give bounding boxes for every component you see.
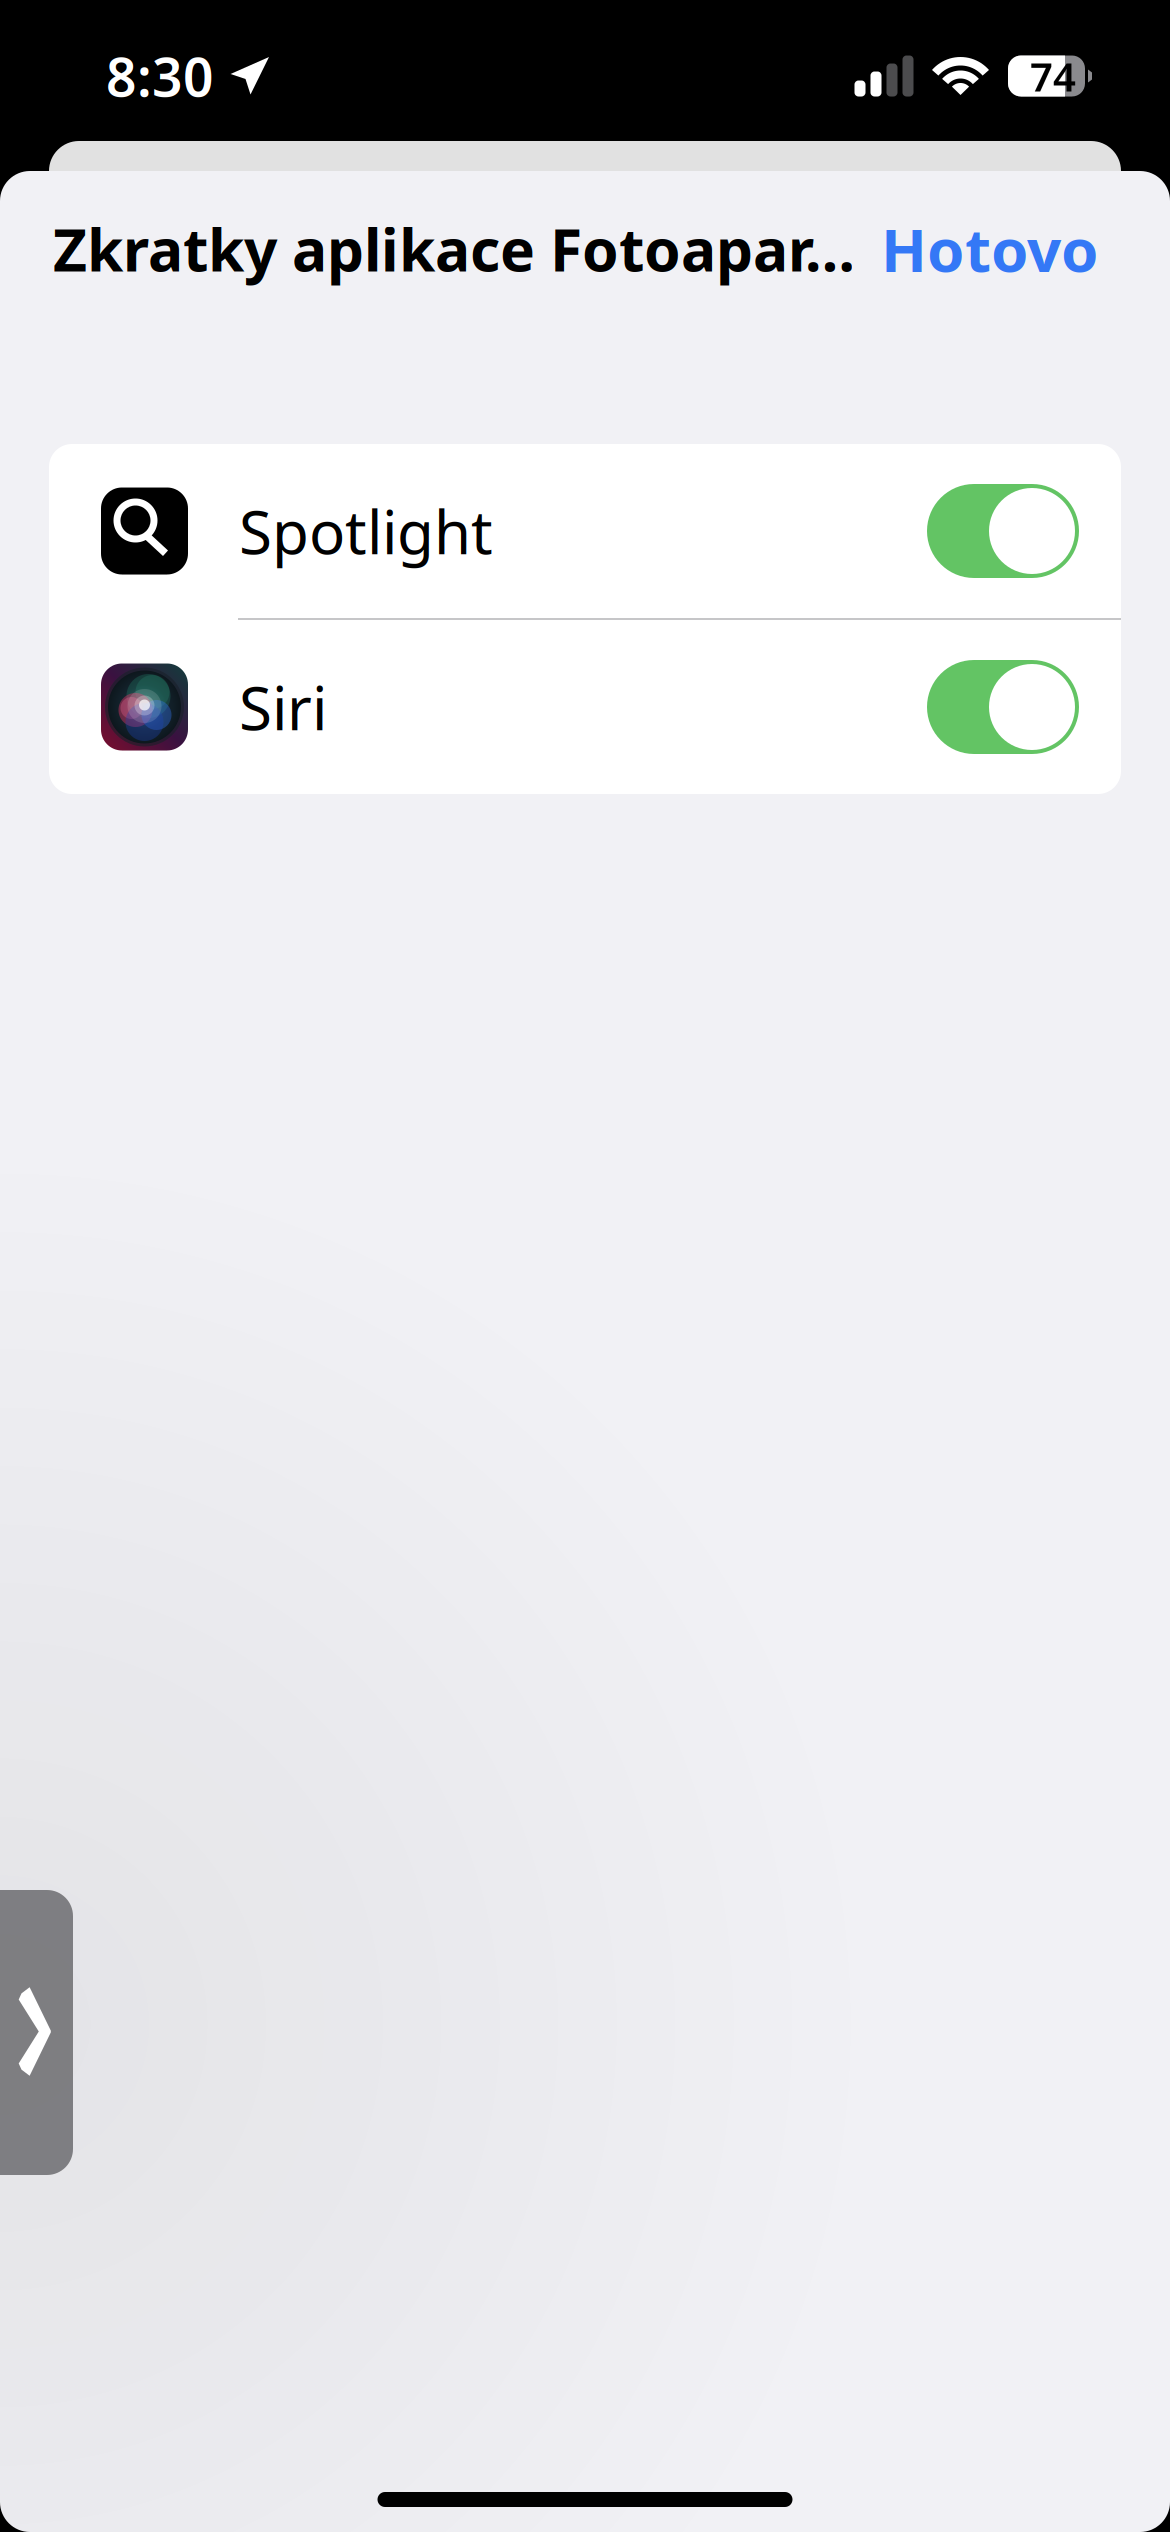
staticText: Zkratky aplikace Fotoapar…: [53, 210, 855, 288]
button[interactable]: Spotlight: [49, 444, 1121, 618]
staticText: 8:30: [106, 41, 214, 111]
staticText: 74: [1030, 49, 1076, 102]
button[interactable]: Back to previous app: [0, 1890, 73, 2175]
staticText: Spotlight: [239, 491, 493, 571]
staticText: Hotovo: [881, 209, 1099, 289]
staticText: Siri: [239, 667, 327, 747]
button[interactable]: Siri: [49, 620, 1121, 794]
button[interactable]: Hotovo: [881, 209, 1099, 289]
